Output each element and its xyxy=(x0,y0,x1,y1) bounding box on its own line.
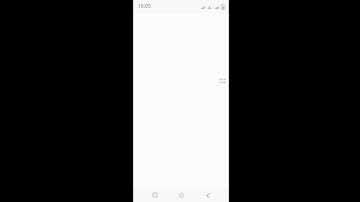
button[interactable]: Open app grid xyxy=(218,77,226,85)
button[interactable]: Back xyxy=(203,190,213,200)
staticText: 10:05 xyxy=(138,3,151,10)
button[interactable]: Home xyxy=(176,190,186,200)
button[interactable]: Recent apps xyxy=(150,190,160,200)
